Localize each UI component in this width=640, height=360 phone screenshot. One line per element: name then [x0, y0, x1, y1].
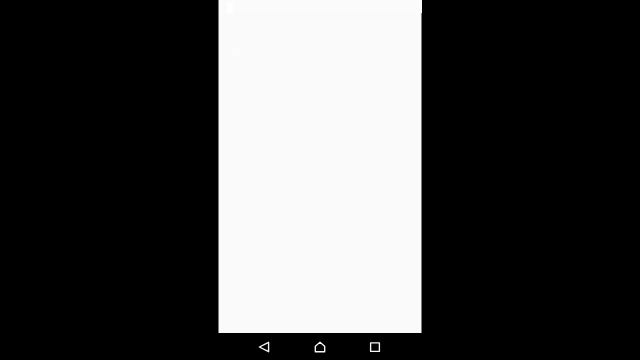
- button[interactable]: Recent apps: [361, 333, 389, 360]
- button[interactable]: Back: [250, 333, 278, 360]
- button[interactable]: Home: [306, 333, 334, 360]
